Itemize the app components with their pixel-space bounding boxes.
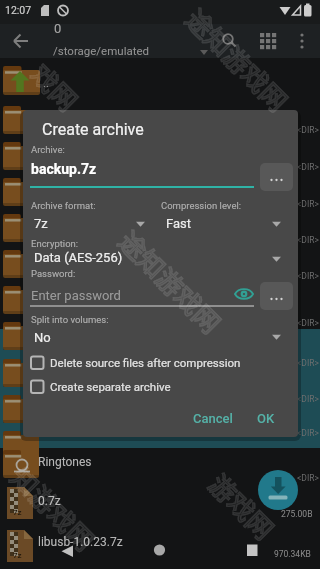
staticText: backup.7z [31, 161, 97, 177]
button[interactable] [28, 377, 278, 398]
staticText: libusb-1.0.23.7z [38, 535, 123, 549]
button[interactable] [238, 537, 268, 563]
button[interactable] [292, 28, 312, 54]
staticText: Enter password [31, 288, 121, 303]
staticText: Create archive [42, 120, 144, 139]
button[interactable] [52, 538, 82, 564]
staticText: 0.7z [38, 494, 61, 508]
staticText: 970.34KB [274, 549, 311, 559]
staticText: /storage/emulated [53, 44, 150, 57]
staticText: <DIR> [297, 428, 319, 438]
staticText: 7z [13, 551, 22, 560]
button[interactable] [260, 282, 293, 310]
button[interactable] [145, 537, 175, 563]
staticText: Password: [31, 268, 76, 279]
staticText: Archive: [31, 144, 65, 155]
staticText: Cancel [193, 411, 233, 426]
staticText: Split into volumes: [31, 314, 109, 325]
button[interactable] [216, 28, 242, 54]
staticText: Delete source files after compression [50, 356, 241, 369]
staticText: <DIR> [297, 394, 319, 404]
staticText: <DIR> [297, 318, 319, 328]
staticText: <DIR> [297, 162, 319, 172]
staticText: Ringtones [38, 455, 92, 469]
button[interactable]: Cancel [185, 406, 240, 430]
staticText: OK [257, 411, 275, 426]
staticText: <DIR> [297, 473, 319, 483]
staticText: <DIR> [297, 199, 319, 209]
staticText: <DIR> [297, 125, 319, 135]
staticText: Compression level: [161, 200, 242, 211]
button[interactable] [28, 353, 278, 374]
staticText: <DIR> [297, 271, 319, 281]
staticText: Archive format: [31, 200, 96, 211]
button[interactable] [6, 28, 34, 54]
staticText: 7z [13, 508, 22, 517]
staticText: <DIR> [297, 235, 319, 245]
button[interactable] [256, 28, 282, 54]
button[interactable] [233, 283, 255, 305]
button[interactable]: OK [246, 406, 286, 430]
button[interactable]: Data (AES-256) [0, 0, 89, 15]
staticText: Create separate archive [50, 380, 171, 393]
staticText: 0 [54, 21, 62, 36]
button[interactable]: 7z [0, 0, 14, 15]
staticText: Encryption: [31, 238, 79, 249]
button[interactable] [258, 470, 298, 510]
button[interactable]: No [0, 0, 17, 15]
button[interactable] [260, 163, 293, 191]
staticText: .. [43, 77, 49, 90]
staticText: <DIR> [297, 358, 319, 368]
button[interactable]: Fast [0, 0, 26, 15]
staticText: 12:07 [5, 4, 32, 16]
staticText: 275.00B [281, 509, 313, 519]
